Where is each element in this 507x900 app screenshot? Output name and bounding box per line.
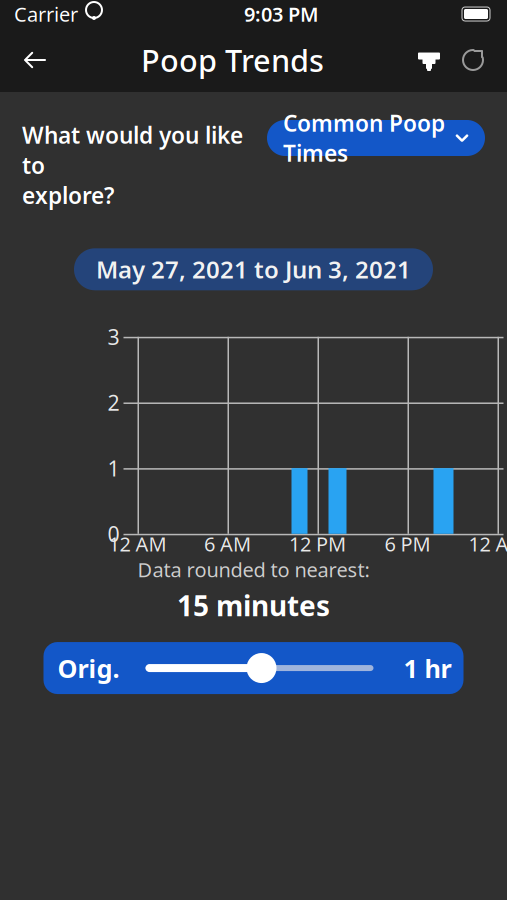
staticText: 1 hr: [403, 651, 451, 685]
button[interactable]: Orig.: [43, 642, 463, 694]
staticText: 12 PM: [289, 530, 346, 557]
button[interactable]: May 27, 2021 to Jun 3, 2021: [74, 248, 433, 290]
staticText: 6 PM: [384, 530, 430, 557]
staticText: 3: [107, 323, 119, 351]
staticText: 6 AM: [204, 530, 251, 557]
button[interactable]: Common Poop Times: [267, 120, 485, 156]
staticText: 0: [107, 520, 119, 548]
staticText: 15 minutes: [177, 587, 330, 624]
staticText: Common Poop Times: [283, 108, 445, 168]
staticText: 2: [107, 388, 119, 417]
button[interactable]: Back: [12, 37, 58, 83]
staticText: 1: [107, 454, 119, 482]
staticText: May 27, 2021 to Jun 3, 2021: [96, 253, 411, 285]
staticText: Orig.: [57, 651, 119, 685]
staticText: Poop Trends: [141, 40, 324, 80]
staticText: 12 AM: [468, 530, 507, 557]
staticText: 9:03 PM: [244, 1, 319, 27]
button[interactable]: Refresh: [451, 37, 495, 83]
staticText: What would you like to explore?: [22, 120, 243, 210]
staticText: 12 AM: [108, 530, 166, 557]
staticText: Data rounded to nearest:: [137, 556, 369, 583]
staticText: Carrier: [14, 1, 78, 27]
button[interactable]: Filter: [407, 37, 451, 83]
